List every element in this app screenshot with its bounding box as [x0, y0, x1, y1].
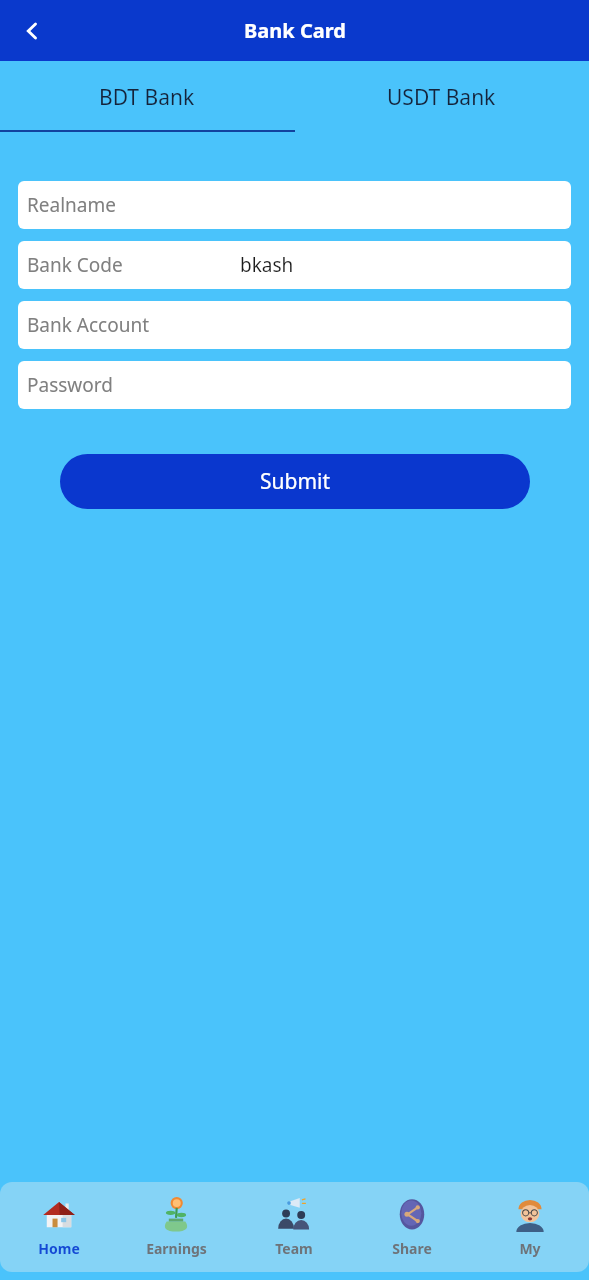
button[interactable]: Back [8, 7, 56, 55]
staticText: Submit [260, 467, 331, 496]
button[interactable]: Share [353, 1196, 471, 1258]
button[interactable]: Bank Code [18, 241, 571, 289]
staticText: Realname [27, 192, 116, 218]
button[interactable]: Realname [18, 181, 571, 229]
staticText: Password [27, 372, 113, 398]
button[interactable]: Password [18, 361, 571, 409]
button[interactable]: Team [235, 1196, 353, 1258]
staticText: My [519, 1239, 541, 1258]
staticText: Bank Card [244, 17, 346, 44]
staticText: Bank Code [27, 252, 123, 278]
staticText: Share [392, 1239, 432, 1258]
staticText: Bank Account [27, 312, 150, 338]
staticText: BDT Bank [99, 83, 195, 112]
button[interactable]: Home [0, 1196, 117, 1258]
staticText: bkash [240, 252, 294, 278]
button[interactable]: Submit [60, 454, 530, 509]
button[interactable]: Earnings [117, 1196, 235, 1258]
staticText: USDT Bank [387, 83, 496, 112]
button[interactable]: Bank Account [18, 301, 571, 349]
button[interactable]: BDT Bank [0, 61, 294, 134]
button[interactable]: My [471, 1196, 589, 1258]
staticText: Home [38, 1239, 80, 1258]
button[interactable]: USDT Bank [294, 61, 589, 134]
staticText: Earnings [146, 1239, 207, 1258]
staticText: Team [275, 1239, 313, 1258]
